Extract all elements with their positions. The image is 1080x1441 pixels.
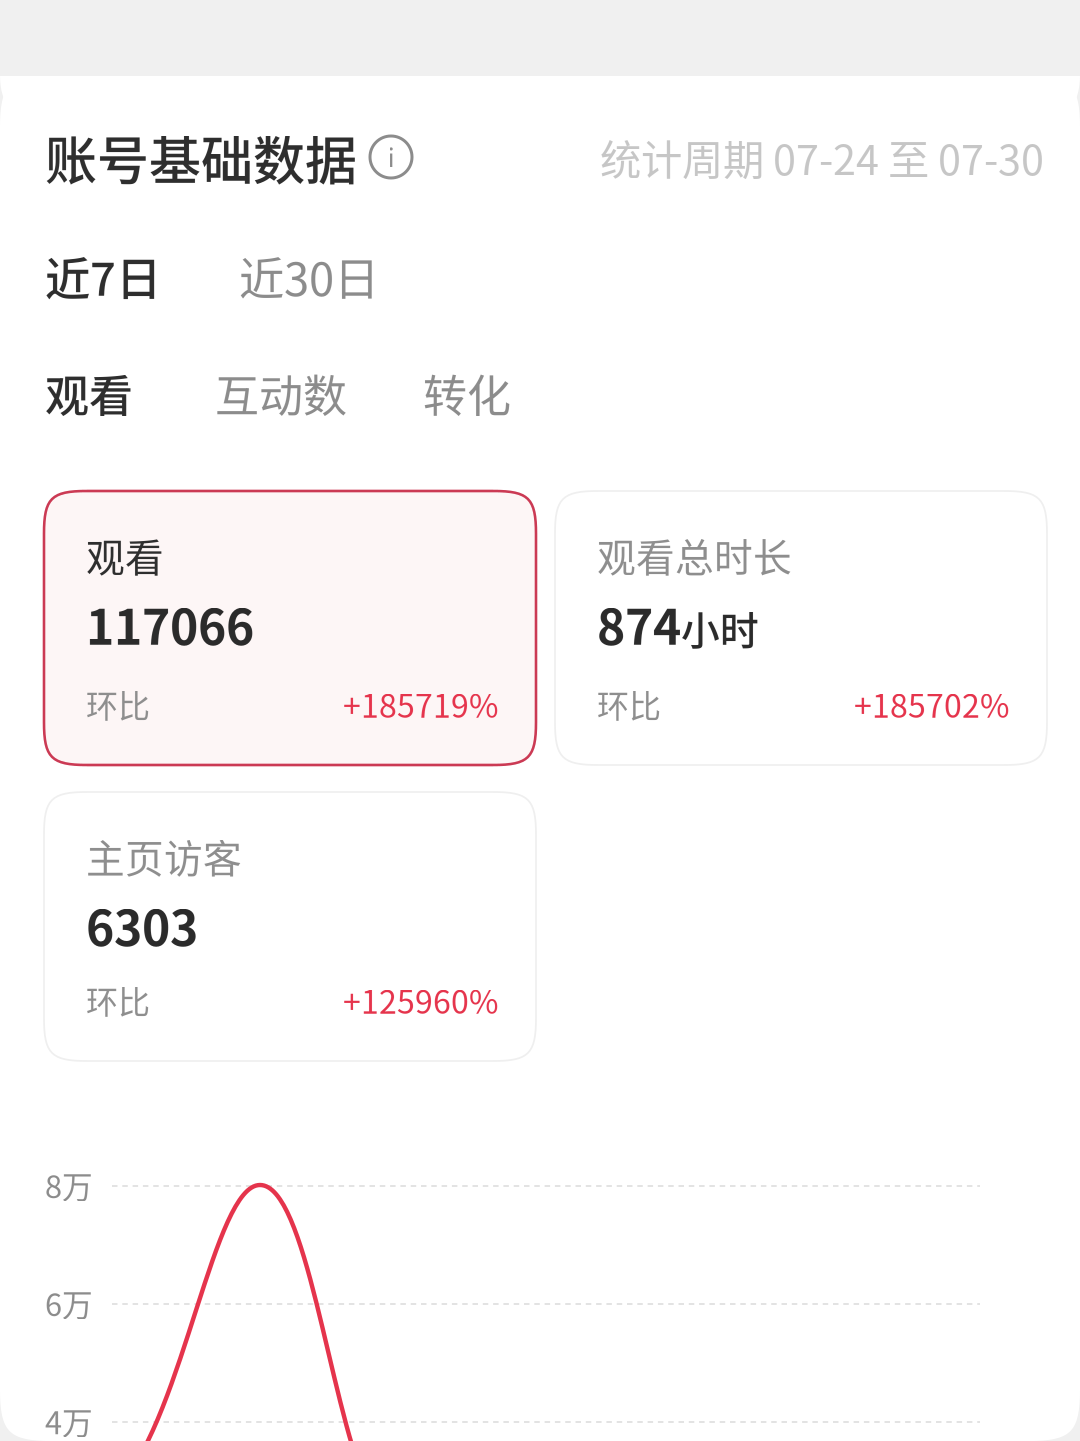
staticText: 近30日	[239, 243, 379, 309]
staticText: 互动数	[215, 361, 347, 425]
staticText: +185702%	[854, 681, 1009, 727]
button[interactable]: 观看	[44, 491, 536, 765]
staticText: 4万	[45, 1399, 93, 1441]
button[interactable]: 数据说明	[370, 136, 412, 178]
button[interactable]: 近30日	[239, 243, 379, 309]
staticText: 统计周期 07-24 至 07-30	[600, 127, 1044, 187]
staticText: +185719%	[343, 681, 498, 727]
button[interactable]: 主页访客	[44, 792, 536, 1061]
staticText: +125960%	[343, 977, 498, 1023]
staticText: i	[387, 137, 394, 175]
staticText: 117066	[86, 589, 254, 658]
staticText: 环比	[86, 977, 150, 1023]
staticText: 6303	[86, 890, 198, 959]
button[interactable]: 互动数	[215, 361, 347, 425]
staticText: 环比	[597, 681, 661, 727]
button[interactable]: 观看总时长	[555, 491, 1047, 765]
staticText: 观看	[45, 361, 133, 425]
staticText: 6万	[45, 1281, 93, 1325]
staticText: 主页访客	[86, 828, 242, 884]
button[interactable]: 观看	[45, 361, 133, 425]
staticText: 8万	[45, 1163, 93, 1207]
staticText: 小时	[681, 600, 759, 656]
staticText: 环比	[86, 681, 150, 727]
button[interactable]: 转化	[423, 361, 511, 425]
staticText: 874	[597, 589, 681, 658]
staticText: 观看	[86, 527, 164, 583]
staticText: 账号基础数据	[45, 119, 357, 195]
staticText: 观看总时长	[597, 527, 792, 583]
staticText: 转化	[423, 361, 511, 425]
button[interactable]: 近7日	[45, 243, 161, 309]
staticText: 近7日	[45, 243, 161, 309]
